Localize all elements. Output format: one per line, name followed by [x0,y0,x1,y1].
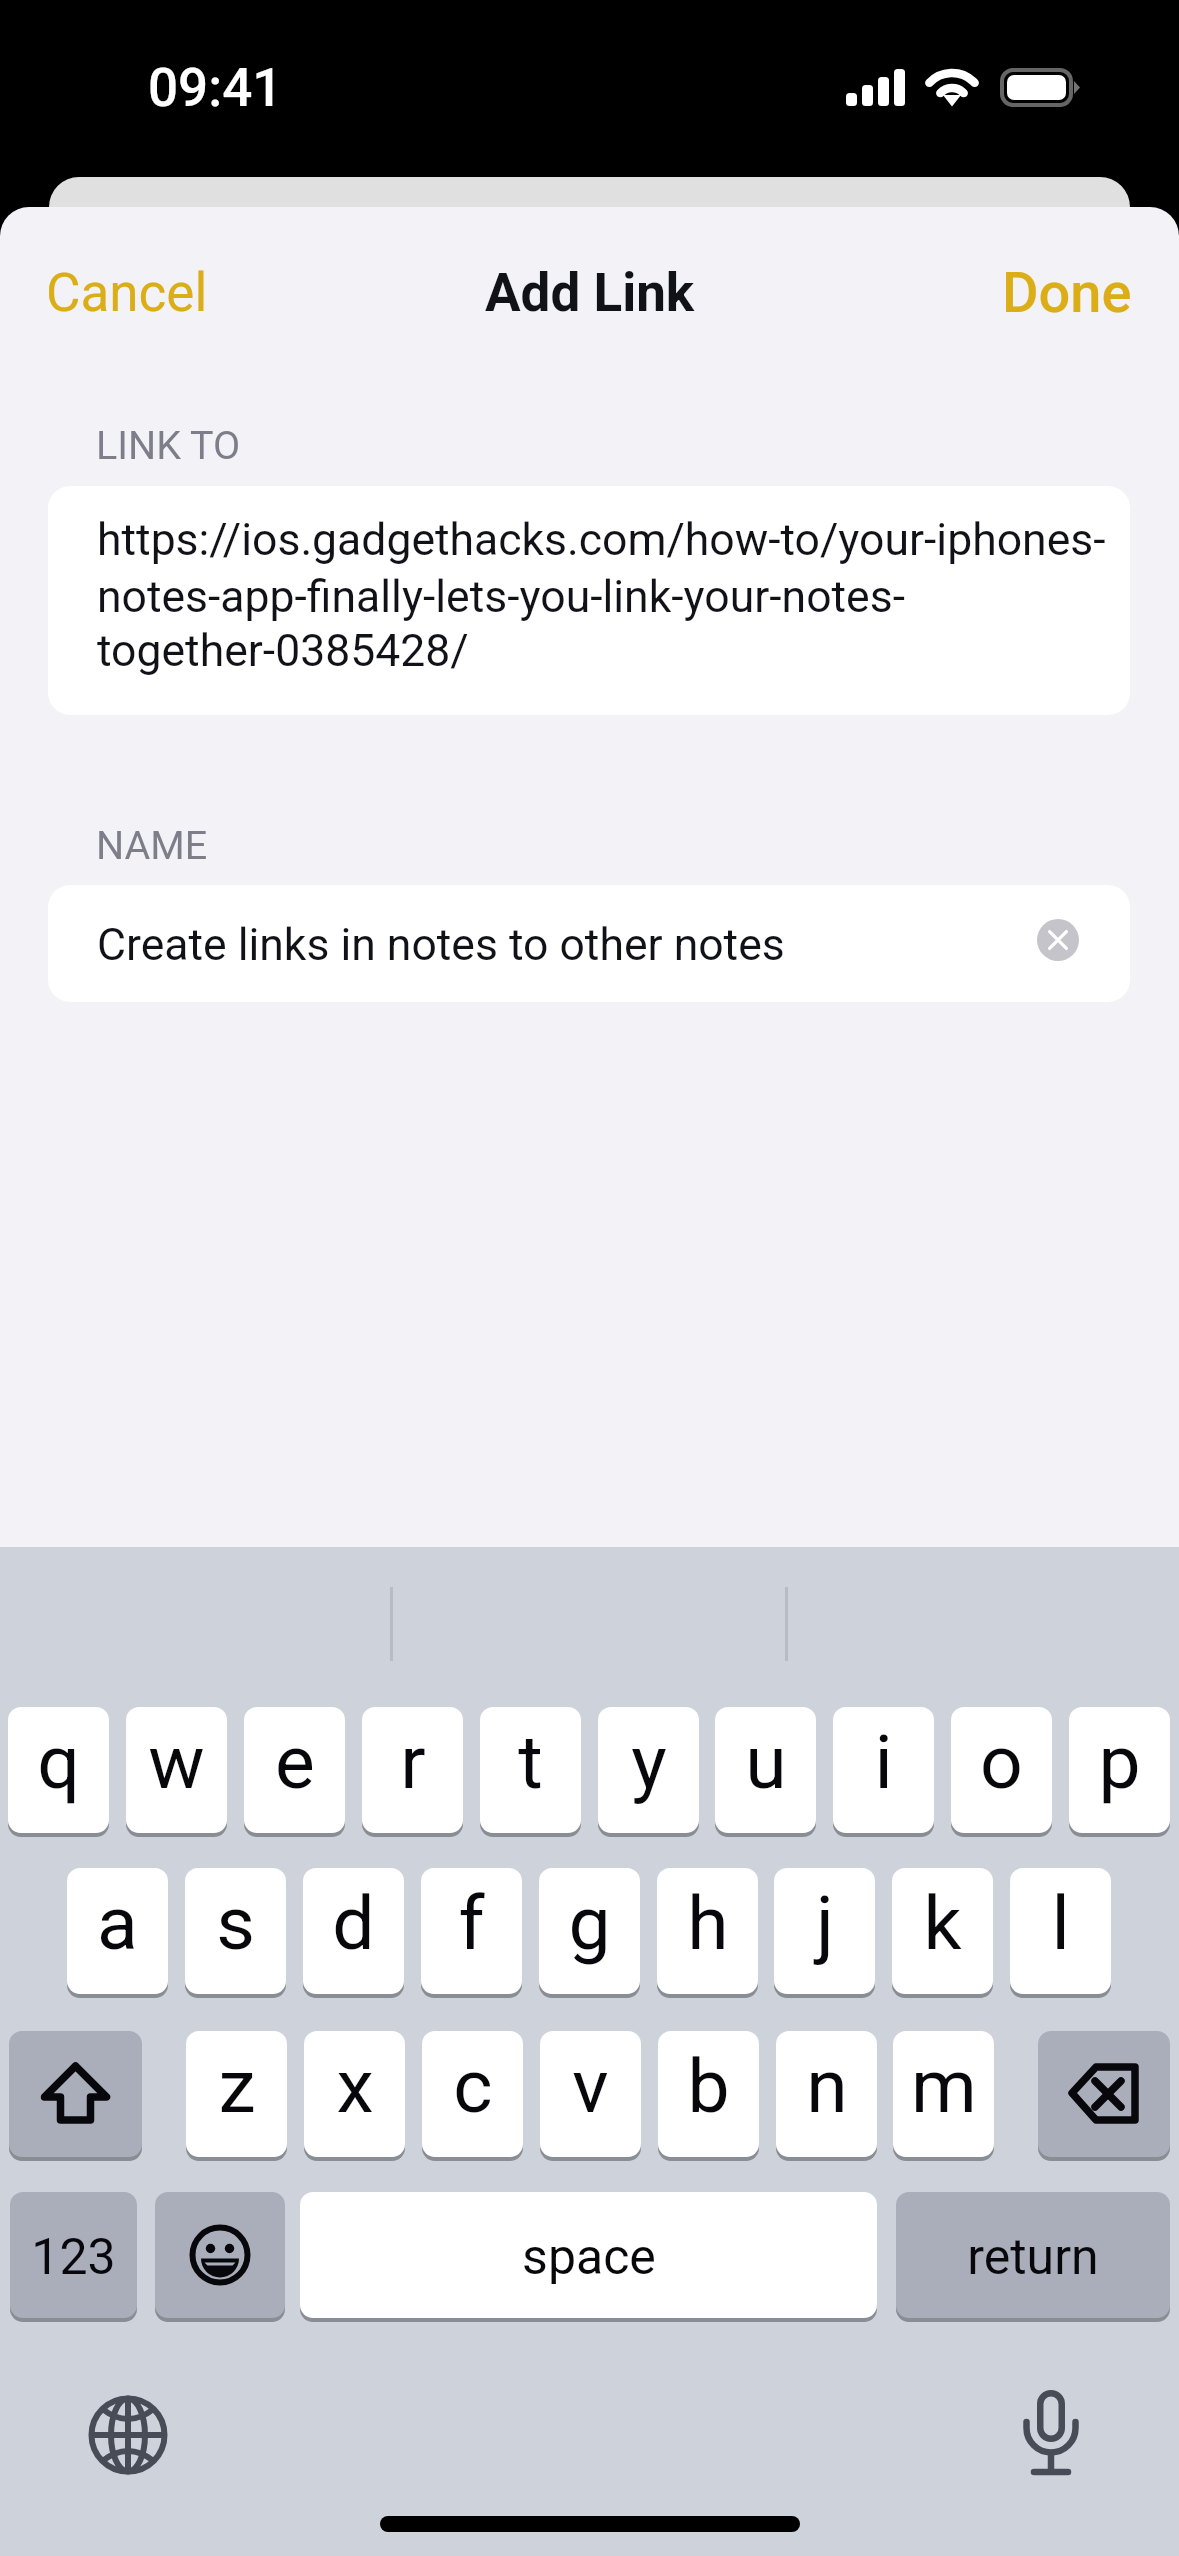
button[interactable]: m [893,2031,994,2157]
staticText: u [745,1718,787,1806]
staticText: 123 [31,2228,116,2287]
button[interactable]: Backspace [1038,2031,1170,2157]
staticText: v [572,2042,609,2130]
button[interactable]: x [304,2031,405,2157]
button[interactable]: h [657,1868,758,1994]
button[interactable]: a [67,1868,168,1994]
button[interactable]: b [658,2031,759,2157]
button[interactable]: r [362,1707,463,1833]
button[interactable]: d [303,1868,404,1994]
staticText: a [97,1879,138,1967]
staticText: https://ios.gadgethacks.com/how-to/your-… [97,514,1106,566]
button[interactable]: f [421,1868,522,1994]
staticText: k [923,1879,962,1967]
staticText: Create links in notes to other notes [97,919,785,971]
button[interactable]: Create links in notes to other notes [48,885,1130,1002]
staticText: s [216,1879,255,1967]
staticText: b [687,2042,730,2130]
staticText: 09:41 [148,57,283,113]
staticText: Add Link [485,262,695,324]
staticText: m [911,2042,977,2130]
staticText: d [332,1879,375,1967]
staticText: q [37,1718,80,1806]
button[interactable]: u [715,1707,816,1833]
button[interactable]: t [480,1707,581,1833]
staticText: c [453,2042,493,2130]
button[interactable]: Done [983,251,1151,335]
staticText: i [874,1718,893,1806]
button[interactable]: g [539,1868,640,1994]
button[interactable]: return [896,2192,1170,2318]
staticText: t [518,1718,543,1806]
staticText: g [568,1879,611,1967]
button[interactable]: y [598,1707,699,1833]
button[interactable]: n [776,2031,877,2157]
button[interactable]: https://ios.gadgethacks.com/how-to/your-… [48,486,1130,715]
button[interactable]: l [1010,1868,1111,1994]
button[interactable]: p [1069,1707,1170,1833]
staticText: y [631,1718,667,1806]
button[interactable]: i [833,1707,934,1833]
staticText: f [458,1879,485,1967]
staticText: e [275,1718,315,1806]
staticText: Cancel [46,262,208,324]
staticText: l [1051,1879,1070,1967]
staticText: Done [1002,260,1132,326]
staticText: r [400,1718,426,1806]
staticText: p [1098,1718,1141,1806]
button[interactable]: s [185,1868,286,1994]
button[interactable]: e [244,1707,345,1833]
staticText: NAME [96,822,208,868]
button[interactable]: space [300,2192,877,2318]
staticText: z [218,2042,256,2130]
button[interactable]: Dictation [1010,2388,1092,2480]
button[interactable]: 123 [10,2192,137,2318]
staticText: return [967,2228,1099,2287]
button[interactable]: w [126,1707,227,1833]
button[interactable]: Cancel [26,251,228,335]
button[interactable]: o [951,1707,1052,1833]
staticText: w [148,1718,205,1806]
button[interactable]: v [540,2031,641,2157]
button[interactable]: k [892,1868,993,1994]
staticText: h [687,1879,729,1967]
staticText: n [806,2042,848,2130]
button[interactable]: Change keyboard [88,2395,168,2475]
button[interactable]: j [774,1868,875,1994]
staticText: LINK TO [96,422,241,468]
staticText: o [980,1718,1023,1806]
button[interactable]: Clear text [1037,919,1079,961]
button[interactable]: q [8,1707,109,1833]
button[interactable]: Shift [9,2031,142,2157]
staticText: space [522,2228,656,2287]
staticText: together-0385428/ [97,625,469,677]
staticText: x [336,2042,374,2130]
staticText: notes-app-finally-lets-you-link-your-not… [97,571,905,623]
staticText: j [816,1879,834,1967]
button[interactable]: Emoji [155,2192,285,2318]
button[interactable]: z [186,2031,287,2157]
button[interactable]: c [422,2031,523,2157]
